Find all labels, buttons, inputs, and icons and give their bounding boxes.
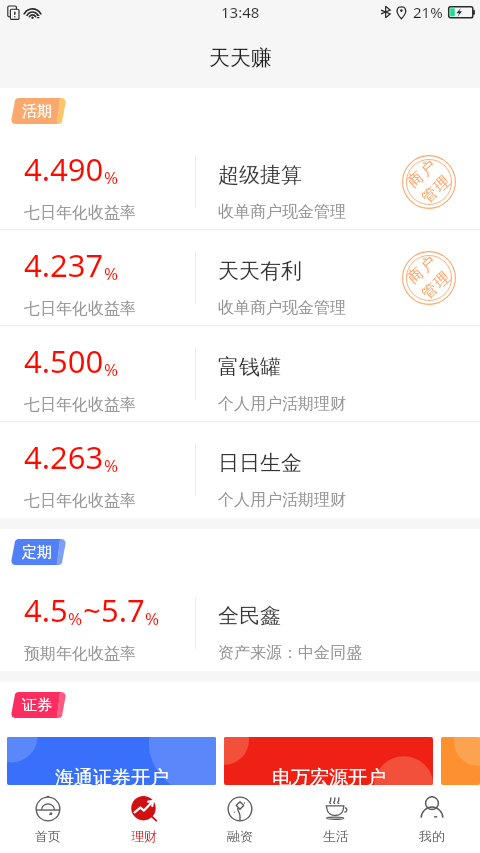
staticText: 商 — [404, 264, 428, 288]
staticText: 富钱罐 — [218, 354, 281, 380]
button[interactable] — [441, 737, 480, 785]
button[interactable]: Life — [288, 785, 384, 853]
button[interactable]: Funding — [192, 785, 288, 853]
staticText: 理 — [430, 268, 454, 292]
staticText: 4.237 — [24, 244, 104, 286]
staticText: % — [145, 607, 160, 630]
button[interactable]: 海通证券开户 — [7, 737, 216, 785]
staticText: 天天有利 — [218, 258, 302, 284]
staticText: 天天赚 — [209, 45, 272, 71]
button[interactable]: 4.237 — [0, 230, 480, 326]
staticText: 4.5 — [24, 589, 68, 631]
staticText: 海通证券开户 — [55, 766, 169, 785]
staticText: 21% — [413, 2, 443, 22]
staticText: 个人用户活期理财 — [218, 490, 346, 510]
staticText: 首页 — [35, 828, 61, 844]
staticText: 收单商户现金管理 — [218, 298, 346, 318]
staticText: % — [104, 454, 119, 477]
button[interactable]: 4.5 — [0, 575, 480, 671]
staticText: 日日生金 — [218, 450, 302, 476]
staticText: 管 — [418, 279, 442, 304]
staticText: % — [104, 262, 119, 285]
button[interactable]: Home — [0, 785, 96, 853]
button[interactable]: 电万宏源开户 — [224, 737, 433, 785]
staticText: ~ — [83, 589, 101, 631]
staticText: 13:48 — [221, 2, 260, 22]
other: Mine — [419, 796, 445, 822]
staticText: 融资 — [227, 828, 253, 844]
button[interactable]: Finance — [96, 785, 192, 853]
staticText: 收单商户现金管理 — [218, 202, 346, 222]
staticText: 4.500 — [24, 340, 104, 382]
staticText: 资产来源：中金同盛 — [218, 643, 362, 663]
staticText: 商 — [404, 168, 428, 192]
staticText: % — [68, 607, 83, 630]
staticText: 电万宏源开户 — [272, 766, 386, 785]
staticText: 户 — [416, 156, 440, 181]
staticText: 理 — [430, 172, 454, 196]
staticText: 5.7 — [101, 589, 145, 631]
other: Home — [35, 796, 61, 822]
staticText: 4.490 — [24, 148, 104, 190]
other: Life — [323, 796, 349, 822]
staticText: 定期 — [22, 543, 52, 562]
button[interactable]: Mine — [384, 785, 480, 853]
button[interactable]: 4.500 — [0, 326, 480, 422]
staticText: 理财 — [131, 828, 157, 844]
staticText: 超级捷算 — [218, 162, 302, 188]
staticText: 预期年化收益率 — [24, 644, 136, 664]
button[interactable]: 4.263 — [0, 422, 480, 518]
other: Funding — [227, 796, 253, 822]
staticText: 七日年化收益率 — [24, 395, 136, 415]
staticText: 个人用户活期理财 — [218, 394, 346, 414]
staticText: 七日年化收益率 — [24, 491, 136, 511]
staticText: 4.263 — [24, 436, 104, 478]
staticText: 我的 — [419, 828, 445, 844]
staticText: % — [104, 166, 119, 189]
button[interactable]: 4.490 — [0, 134, 480, 230]
staticText: 全民鑫 — [218, 603, 281, 629]
staticText: 管 — [418, 183, 442, 208]
staticText: 活期 — [22, 102, 52, 121]
other: Finance — [131, 796, 157, 822]
staticText: % — [104, 358, 119, 381]
staticText: 生活 — [323, 828, 349, 844]
staticText: 七日年化收益率 — [24, 203, 136, 223]
staticText: 七日年化收益率 — [24, 299, 136, 319]
staticText: 户 — [416, 252, 440, 277]
staticText: 证券 — [22, 696, 52, 715]
